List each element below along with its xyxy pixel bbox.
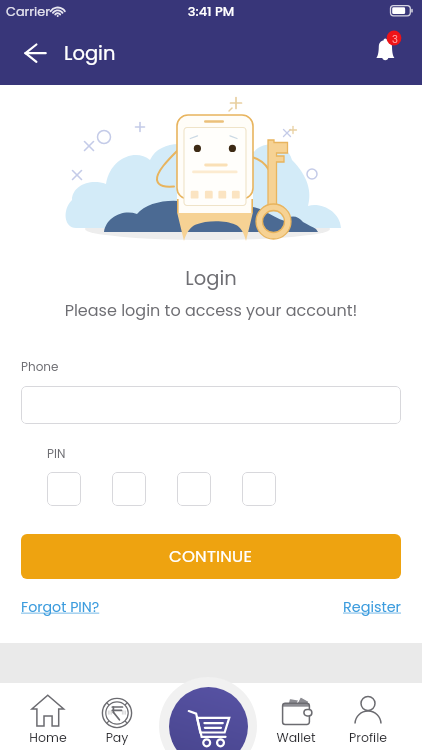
button[interactable] xyxy=(242,472,276,506)
button[interactable]: Profile xyxy=(330,683,406,750)
staticText: PIN xyxy=(47,445,66,462)
button[interactable] xyxy=(47,472,81,506)
staticText: Wallet xyxy=(258,729,334,746)
button[interactable]: Cart xyxy=(169,687,248,750)
staticText: 3 xyxy=(392,32,398,46)
staticText: Register xyxy=(343,597,401,617)
button[interactable] xyxy=(21,386,401,424)
staticText: Login xyxy=(0,265,422,292)
button[interactable]: Pay xyxy=(79,683,155,750)
button[interactable]: Forgot PIN? xyxy=(21,597,100,617)
staticText: Please login to access your account! xyxy=(0,299,422,321)
button[interactable]: CONTINUE xyxy=(21,534,401,579)
button[interactable]: Back xyxy=(15,39,55,75)
button[interactable]: Notifications xyxy=(370,28,410,85)
staticText: Forgot PIN? xyxy=(21,597,100,617)
staticText: Profile xyxy=(330,729,406,746)
staticText: 3:41 PM xyxy=(0,2,422,20)
button[interactable]: Wallet xyxy=(258,683,334,750)
button[interactable] xyxy=(177,472,211,506)
staticText: Pay xyxy=(79,729,155,746)
button[interactable] xyxy=(112,472,146,506)
staticText: Login xyxy=(64,40,116,67)
staticText: Phone xyxy=(21,358,59,375)
staticText: Home xyxy=(10,729,86,746)
staticText: CONTINUE xyxy=(169,545,253,568)
button[interactable]: Register xyxy=(343,597,401,617)
staticText: Carrier xyxy=(6,3,50,21)
button[interactable]: Home xyxy=(10,683,86,750)
